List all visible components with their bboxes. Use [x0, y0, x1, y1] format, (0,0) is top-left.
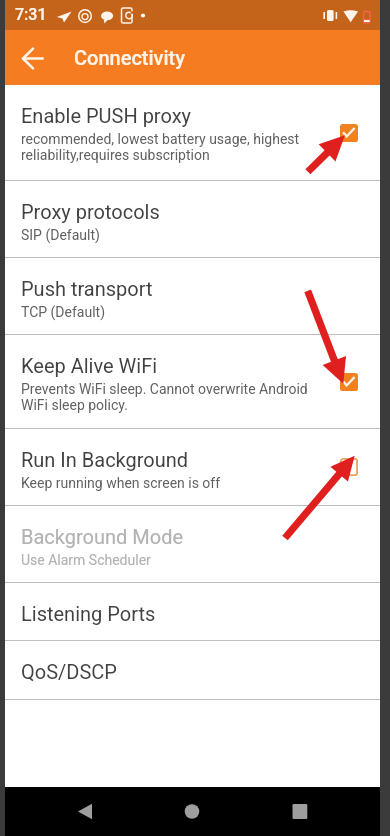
staticText: Keep running when screen is off	[21, 475, 221, 491]
staticText: Background Mode	[21, 525, 184, 548]
button[interactable]: Enable PUSH proxy	[340, 124, 358, 142]
staticText: Use Alarm Scheduler	[21, 552, 151, 568]
staticText: Prevents WiFi sleep. Cannot overwrite An…	[21, 381, 308, 413]
button[interactable]: Keep Alive WiFi	[0, 335, 390, 428]
button[interactable]: QoS/DSCP	[0, 641, 390, 699]
staticText: Keep Alive WiFi	[21, 354, 158, 377]
button[interactable]: Back	[18, 41, 52, 75]
staticText: Push transport	[21, 277, 153, 300]
staticText: TCP (Default)	[21, 304, 106, 320]
button[interactable]: Run In Background	[0, 429, 390, 505]
button[interactable]: Enable PUSH proxy	[0, 85, 390, 180]
staticText: 7:31	[15, 5, 47, 24]
staticText: QoS/DSCP	[21, 660, 117, 683]
button[interactable]: Keep Alive WiFi	[340, 373, 358, 391]
staticText: recommended, lowest battery usage, highe…	[21, 131, 300, 163]
button[interactable]: Listening Ports	[0, 583, 390, 640]
button[interactable]: Run In Background	[340, 458, 358, 476]
staticText: Proxy protocols	[21, 200, 160, 223]
staticText: Run In Background	[21, 448, 189, 471]
button[interactable]: Proxy protocols	[0, 181, 390, 257]
button[interactable]: Background Mode	[0, 506, 390, 582]
staticText: Enable PUSH proxy	[21, 104, 192, 127]
staticText: Connectivity	[74, 46, 186, 69]
button[interactable]: Push transport	[0, 258, 390, 334]
staticText: SIP (Default)	[21, 227, 100, 243]
staticText: Listening Ports	[21, 602, 156, 625]
